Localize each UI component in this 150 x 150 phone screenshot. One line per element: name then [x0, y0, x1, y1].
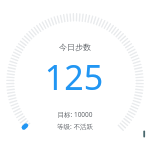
staticText: 目标: 10000	[0, 110, 150, 119]
staticText: 今日步数	[0, 42, 150, 52]
staticText: 等级: 不活跃	[0, 122, 150, 131]
staticText: 125	[0, 54, 149, 100]
